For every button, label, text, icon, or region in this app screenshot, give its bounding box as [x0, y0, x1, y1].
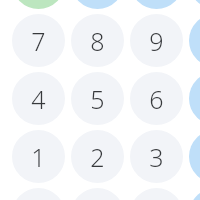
button[interactable]: 2 — [71, 130, 124, 183]
button[interactable]: Hash — [130, 188, 183, 200]
button[interactable]: Option — [130, 0, 183, 9]
staticText: 8 — [90, 24, 105, 58]
button[interactable]: 8 — [71, 14, 124, 67]
button[interactable]: Call — [12, 0, 65, 9]
button[interactable]: 5 — [71, 72, 124, 125]
button[interactable]: 6 — [130, 72, 183, 125]
button[interactable]: 7 — [12, 14, 65, 67]
staticText: 6 — [149, 82, 164, 116]
button[interactable]: 4 — [12, 72, 65, 125]
button[interactable]: 3 — [130, 130, 183, 183]
staticText: 9 — [149, 24, 164, 58]
staticText: 4 — [31, 82, 46, 116]
staticText: 2 — [90, 140, 105, 174]
button[interactable]: Option — [189, 0, 200, 9]
button[interactable]: 1 — [12, 130, 65, 183]
staticText: 3 — [149, 140, 164, 174]
staticText: 5 — [90, 82, 105, 116]
staticText: 1 — [31, 140, 46, 174]
staticText: 7 — [31, 24, 46, 58]
button[interactable]: Option — [189, 72, 200, 125]
button[interactable]: Option — [189, 130, 200, 183]
button[interactable]: Option — [189, 188, 200, 200]
button[interactable]: Zero — [71, 188, 124, 200]
button[interactable]: Star — [12, 188, 65, 200]
button[interactable]: 9 — [130, 14, 183, 67]
button[interactable]: Option — [71, 0, 124, 9]
button[interactable]: Option — [189, 14, 200, 67]
